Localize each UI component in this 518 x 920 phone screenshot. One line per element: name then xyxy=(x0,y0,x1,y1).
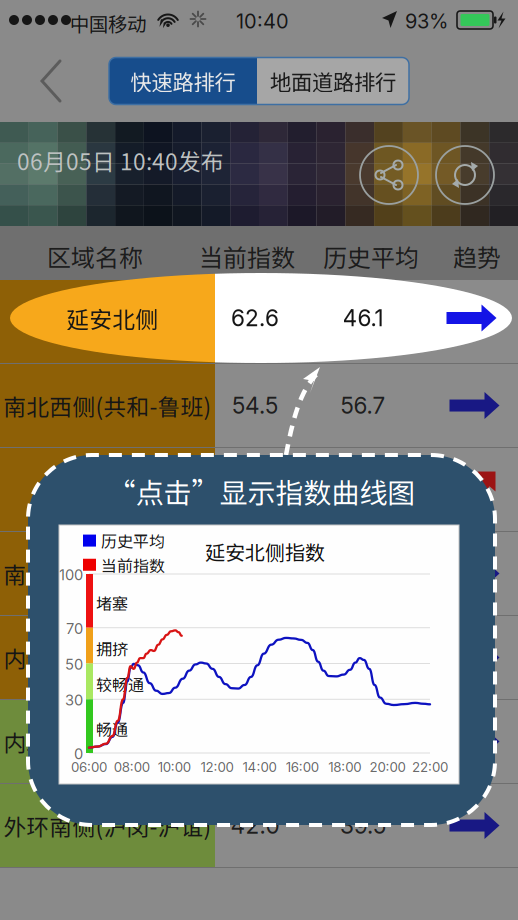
staticText: 10:00 xyxy=(158,759,191,775)
staticText: 南北东侧(共和-鲁班) xyxy=(3,557,211,590)
staticText: 拥挤 xyxy=(96,637,128,660)
staticText: 48.4 xyxy=(338,560,387,587)
staticText: 93% xyxy=(405,9,448,33)
button[interactable]: 内环内侧(鲁班-延西) xyxy=(0,700,518,783)
staticText: 内环外侧(鲁班-延西) xyxy=(3,641,211,674)
staticText: 12:00 xyxy=(200,759,233,775)
staticText: 南北西侧(共和-鲁班) xyxy=(3,389,211,422)
button[interactable]: 南北东侧(共和-鲁班) xyxy=(0,532,518,615)
staticText: 畅通 xyxy=(96,717,128,740)
staticText: 区域名称 xyxy=(47,239,143,274)
staticText: 趋势 xyxy=(453,239,501,274)
staticText: 30 xyxy=(65,691,83,709)
staticText: 46.1 xyxy=(342,304,383,332)
staticText: 较畅通 xyxy=(96,672,144,696)
staticText: 当前指数 xyxy=(101,553,165,576)
staticText: 18:00 xyxy=(328,759,361,775)
button[interactable]: 延安南侧 xyxy=(0,448,518,531)
staticText: “点击”显示指数曲线图 xyxy=(107,471,415,511)
staticText: 43.9 xyxy=(231,728,279,755)
button[interactable]: Back xyxy=(22,51,82,111)
button[interactable]: 延安北侧 xyxy=(0,280,518,363)
staticText: 当前指数 xyxy=(199,239,295,274)
staticText: 42.0 xyxy=(230,812,279,839)
staticText: 16:00 xyxy=(286,759,319,775)
button[interactable]: 南北西侧(共和-鲁班) xyxy=(0,364,518,447)
staticText: 延安北侧 xyxy=(61,305,153,338)
staticText: 62.6 xyxy=(231,304,279,332)
staticText: 22:00 xyxy=(412,759,448,775)
staticText: 06月05日 10:40发布 xyxy=(17,144,224,177)
staticText: 延安北侧 xyxy=(66,302,158,334)
staticText: 10:40 xyxy=(236,9,289,33)
staticText: 50 xyxy=(65,655,83,673)
staticText: 54.5 xyxy=(232,392,278,419)
staticText: 延安南侧 xyxy=(61,473,153,506)
button[interactable]: Share xyxy=(360,146,418,204)
button[interactable]: 内环外侧(鲁班-延西) xyxy=(0,616,518,699)
staticText: 内环内侧(鲁班-延西) xyxy=(3,725,211,758)
staticText: 20:00 xyxy=(369,759,405,775)
staticText: 70 xyxy=(66,620,83,637)
staticText: 40.8 xyxy=(338,728,387,755)
staticText: 历史平均 xyxy=(101,529,165,552)
staticText: 46.1 xyxy=(342,308,383,335)
staticText: 47.6 xyxy=(233,644,277,671)
staticText: 中国移动 xyxy=(70,9,146,37)
staticText: 45.2 xyxy=(339,644,387,671)
staticText: 06:00 xyxy=(71,759,107,775)
staticText: 历史平均 xyxy=(323,239,419,274)
staticText: 52.9 xyxy=(231,476,278,503)
button[interactable]: Refresh xyxy=(436,146,494,204)
staticText: 地面道路排行 xyxy=(270,66,396,96)
button[interactable]: 外环南侧(沪闵-沪谊) xyxy=(0,784,518,867)
button[interactable]: 快速路排行 xyxy=(109,57,257,104)
staticText: 08:00 xyxy=(114,759,150,775)
staticText: 14:00 xyxy=(242,759,276,775)
staticText: 50.3 xyxy=(231,560,278,587)
staticText: 快速路排行 xyxy=(130,66,235,96)
button[interactable]: 地面道路排行 xyxy=(257,57,409,104)
staticText: 56.7 xyxy=(340,392,385,419)
staticText: 延安北侧指数 xyxy=(205,537,325,566)
staticText: 39.5 xyxy=(340,812,386,839)
staticText: 外环南侧(沪闵-沪谊) xyxy=(3,809,211,842)
staticText: 43.7 xyxy=(339,476,386,503)
staticText: 0 xyxy=(74,745,83,763)
staticText: 堵塞 xyxy=(96,591,128,614)
staticText: 100 xyxy=(59,566,83,584)
staticText: 62.6 xyxy=(231,308,279,335)
